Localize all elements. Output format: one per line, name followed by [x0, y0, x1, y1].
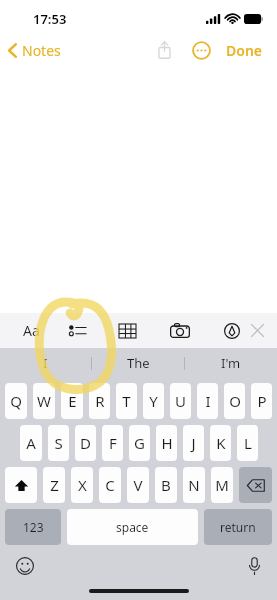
staticText: return	[220, 519, 256, 535]
button[interactable]: Checklist	[65, 320, 91, 341]
button[interactable]: Share	[151, 35, 178, 65]
staticText: D	[80, 433, 91, 453]
button[interactable]: I	[197, 383, 218, 419]
button[interactable]: S	[48, 425, 69, 461]
button[interactable]: R	[89, 383, 110, 419]
staticText: 17:53	[33, 10, 67, 28]
staticText: I	[43, 354, 48, 372]
staticText: E	[68, 391, 77, 411]
button[interactable]: More options	[188, 37, 215, 64]
staticText: The	[127, 354, 150, 372]
staticText: X	[78, 475, 87, 495]
staticText: U	[175, 391, 186, 411]
staticText: B	[161, 475, 171, 495]
button[interactable]: The	[92, 348, 184, 378]
button[interactable]: Markup	[220, 319, 244, 343]
staticText: Q	[10, 391, 22, 411]
button[interactable]: L	[237, 425, 258, 461]
staticText: O	[229, 391, 241, 411]
button[interactable]: Shift	[5, 467, 37, 503]
button[interactable]: Backspace	[239, 467, 272, 503]
button[interactable]: Camera	[166, 319, 194, 342]
staticText: M	[215, 475, 229, 495]
staticText: I'm	[221, 354, 241, 372]
staticText: Aa	[23, 321, 40, 340]
button[interactable]: Dictation	[242, 551, 267, 581]
button[interactable]: B	[155, 467, 177, 503]
staticText: W	[37, 391, 51, 411]
staticText: C	[105, 475, 115, 495]
button[interactable]: Close	[246, 319, 277, 342]
staticText: I	[205, 391, 211, 411]
staticText: R	[95, 391, 105, 411]
button[interactable]: J	[183, 425, 204, 461]
button[interactable]: Aa	[20, 317, 43, 344]
button[interactable]: I	[0, 348, 91, 378]
button[interactable]: H	[156, 425, 177, 461]
button[interactable]: M	[211, 467, 233, 503]
button[interactable]: G	[129, 425, 150, 461]
button[interactable]: P	[251, 383, 272, 419]
button[interactable]: U	[170, 383, 191, 419]
button[interactable]: I'm	[185, 348, 277, 378]
staticText: J	[191, 433, 196, 453]
button[interactable]: Notes	[0, 37, 69, 64]
button[interactable]: Y	[143, 383, 164, 419]
button[interactable]: N	[183, 467, 205, 503]
staticText: 123	[23, 519, 44, 535]
staticText: space	[116, 519, 149, 535]
staticText: F	[109, 433, 117, 453]
staticText: V	[133, 475, 143, 495]
button[interactable]: O	[224, 383, 245, 419]
staticText: H	[161, 433, 173, 453]
staticText: A	[26, 433, 36, 453]
button[interactable]: F	[102, 425, 123, 461]
staticText: P	[257, 391, 267, 411]
button[interactable]: C	[99, 467, 121, 503]
staticText: G	[134, 433, 145, 453]
button[interactable]: Table	[115, 320, 140, 342]
button[interactable]: Q	[5, 383, 27, 419]
staticText: Y	[149, 391, 158, 411]
button[interactable]: 123	[5, 509, 61, 545]
staticText: Z	[50, 475, 59, 495]
button[interactable]: D	[75, 425, 96, 461]
button[interactable]: Emoji	[10, 551, 40, 581]
button[interactable]: E	[61, 383, 83, 419]
staticText: Notes	[22, 41, 61, 60]
button[interactable]: T	[116, 383, 137, 419]
staticText: Done	[226, 41, 263, 60]
button[interactable]: A	[20, 425, 42, 461]
button[interactable]: space	[67, 509, 198, 545]
button[interactable]: V	[127, 467, 149, 503]
staticText: N	[188, 475, 200, 495]
button[interactable]: K	[210, 425, 231, 461]
button[interactable]: W	[33, 383, 55, 419]
staticText: S	[54, 433, 63, 453]
staticText: K	[216, 433, 226, 453]
button[interactable]: return	[204, 509, 272, 545]
staticText: L	[244, 433, 252, 453]
button[interactable]: X	[71, 467, 93, 503]
staticText: T	[122, 391, 131, 411]
button[interactable]: Z	[43, 467, 65, 503]
button[interactable]: Done	[222, 37, 267, 64]
